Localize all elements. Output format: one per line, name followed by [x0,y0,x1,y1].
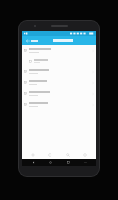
button[interactable] [22,66,96,77]
button[interactable]: Home [43,159,57,166]
button[interactable]: Recents [61,159,75,166]
button[interactable]: Back [24,37,31,44]
button[interactable]: Add [26,150,40,159]
button[interactable] [22,88,96,99]
button[interactable] [22,56,96,66]
button[interactable]: Sync [43,150,57,159]
button[interactable] [22,99,96,110]
button[interactable] [22,45,96,56]
button[interactable]: Search [61,150,75,159]
button[interactable] [22,77,96,88]
button[interactable]: More [78,150,92,159]
button[interactable]: Menu [78,159,92,166]
button[interactable]: Back [26,159,40,166]
